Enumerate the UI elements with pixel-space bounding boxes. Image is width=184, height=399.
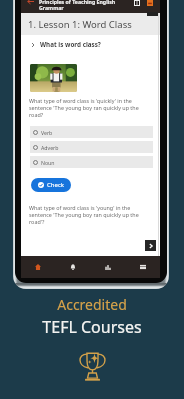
button[interactable]: Bookmark [145, 0, 155, 9]
button[interactable]: Progress [98, 257, 118, 277]
button[interactable]: What is word class? [21, 40, 160, 49]
button[interactable]: Check [31, 178, 71, 192]
button[interactable]: Back [24, 0, 37, 8]
staticText: Noun [41, 159, 55, 166]
staticText: Principles of Teaching English Grammar [39, 0, 130, 11]
staticText: 1. Lesson 1: Word Class [28, 18, 132, 31]
staticText: Adverb [41, 144, 59, 151]
button[interactable]: Home [28, 257, 48, 277]
staticText: What type of word class is 'young' in th… [29, 204, 152, 225]
button[interactable]: Contents [132, 0, 142, 9]
button[interactable]: Next [145, 240, 156, 251]
button[interactable]: Notifications [63, 257, 83, 277]
button[interactable]: Adverb [30, 141, 153, 153]
staticText: Check [47, 181, 64, 189]
staticText: What is word class? [40, 40, 101, 49]
staticText: What type of word class is 'quickly' in … [29, 97, 152, 118]
staticText: Verb [41, 129, 53, 136]
staticText: Accredited [57, 295, 127, 314]
button[interactable]: Noun [30, 156, 153, 168]
button[interactable]: Menu [133, 257, 153, 277]
button[interactable]: Verb [30, 126, 153, 138]
staticText: TEFL Courses [42, 316, 142, 338]
